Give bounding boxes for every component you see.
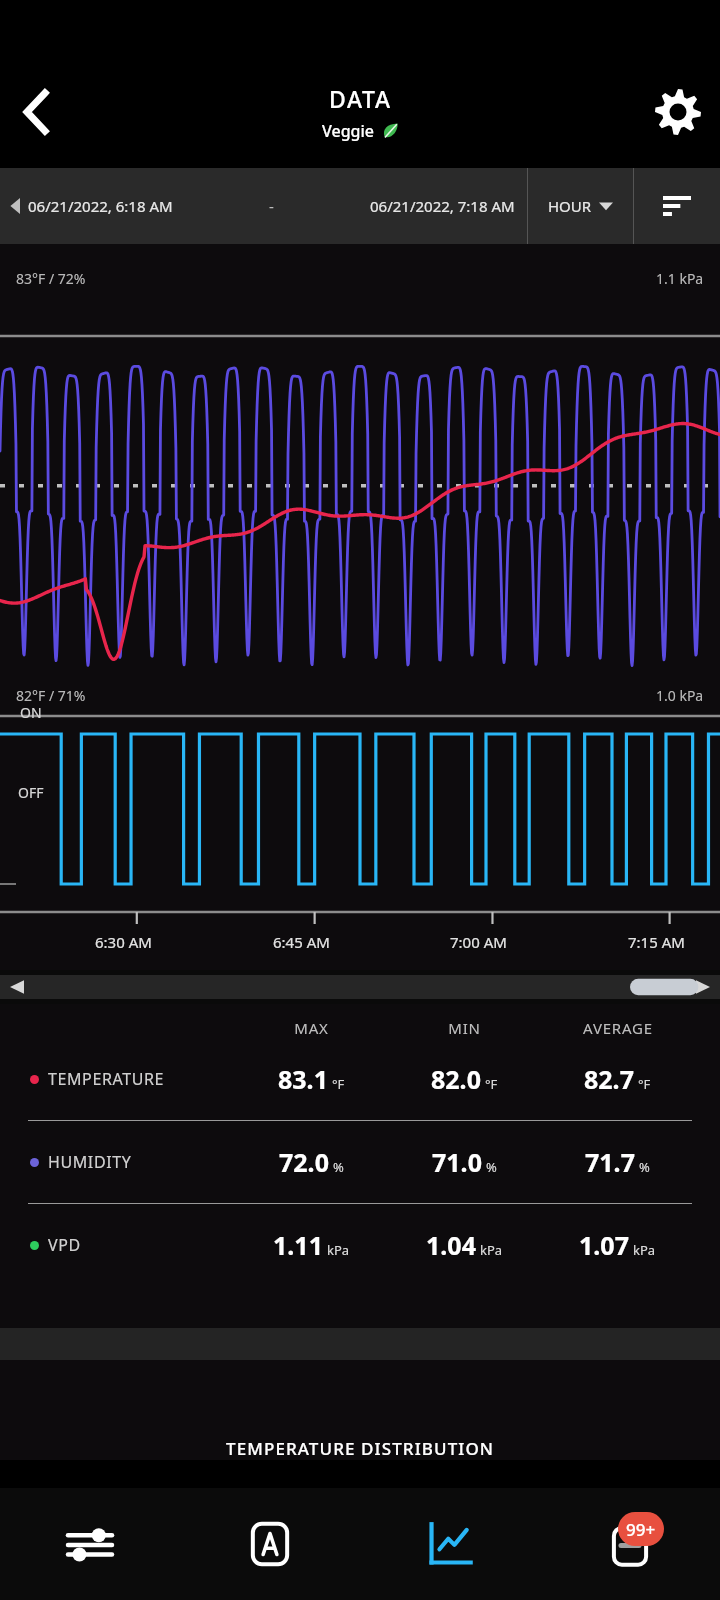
staticText: % bbox=[333, 1158, 344, 1176]
staticText: 7:15 AM bbox=[628, 932, 685, 952]
button[interactable]: HOUR bbox=[528, 168, 633, 244]
staticText: % bbox=[639, 1158, 650, 1176]
staticText: kPa bbox=[327, 1241, 350, 1259]
staticText: kPa bbox=[480, 1241, 503, 1259]
staticText: HOUR bbox=[548, 196, 592, 216]
staticText: 7:00 AM bbox=[450, 932, 507, 952]
button[interactable]: 06/21/2022, 6:18 AM bbox=[0, 168, 527, 244]
button[interactable]: Back bbox=[8, 84, 64, 140]
staticText: 83°F / 72% bbox=[16, 269, 86, 288]
button[interactable]: TEMPERATURE bbox=[0, 1038, 720, 1120]
button[interactable]: Controls bbox=[0, 1488, 180, 1600]
staticText: % bbox=[486, 1158, 497, 1176]
staticText: MAX bbox=[294, 1018, 329, 1038]
button[interactable]: Notifications bbox=[540, 1488, 720, 1600]
staticText: 82.0 bbox=[431, 1062, 481, 1096]
staticText: OFF bbox=[18, 783, 44, 802]
staticText: °F bbox=[332, 1075, 345, 1093]
staticText: - bbox=[269, 196, 274, 216]
staticText: 06/21/2022, 6:18 AM bbox=[28, 196, 173, 216]
button[interactable]: Data bbox=[360, 1488, 540, 1600]
staticText: 6:45 AM bbox=[273, 932, 330, 952]
staticText: AVERAGE bbox=[583, 1018, 653, 1038]
button[interactable]: Settings bbox=[650, 84, 706, 140]
staticText: 83.1 bbox=[278, 1062, 328, 1096]
staticText: 6:30 AM bbox=[95, 932, 152, 952]
staticText: 1.1 kPa bbox=[656, 269, 704, 288]
staticText: ON bbox=[20, 703, 42, 722]
staticText: 82.7 bbox=[584, 1062, 634, 1096]
button[interactable]: Filter bbox=[634, 168, 720, 244]
staticText: 1.0 kPa bbox=[656, 686, 704, 705]
staticText: HUMIDITY bbox=[48, 1151, 132, 1173]
staticText: TEMPERATURE bbox=[48, 1068, 164, 1090]
button[interactable]: VPD bbox=[0, 1204, 720, 1286]
staticText: 06/21/2022, 7:18 AM bbox=[370, 196, 515, 216]
staticText: 1.04 bbox=[426, 1228, 476, 1262]
staticText: 71.7 bbox=[585, 1145, 635, 1179]
staticText: °F bbox=[485, 1075, 498, 1093]
staticText: 71.0 bbox=[432, 1145, 482, 1179]
staticText: Veggie bbox=[322, 120, 375, 142]
staticText: 99+ bbox=[626, 1518, 656, 1541]
button[interactable]: HUMIDITY bbox=[0, 1121, 720, 1203]
staticText: 1.07 bbox=[579, 1228, 629, 1262]
staticText: DATA bbox=[329, 83, 392, 114]
staticText: °F bbox=[638, 1075, 651, 1093]
staticText: 1.11 bbox=[273, 1228, 323, 1262]
staticText: 82°F / 71% bbox=[16, 686, 86, 705]
staticText: kPa bbox=[633, 1241, 656, 1259]
staticText: 72.0 bbox=[279, 1145, 329, 1179]
staticText: TEMPERATURE DISTRIBUTION bbox=[226, 1437, 495, 1460]
staticText: VPD bbox=[48, 1234, 81, 1256]
button[interactable]: Auto mode bbox=[180, 1488, 360, 1600]
staticText: MIN bbox=[448, 1018, 481, 1038]
